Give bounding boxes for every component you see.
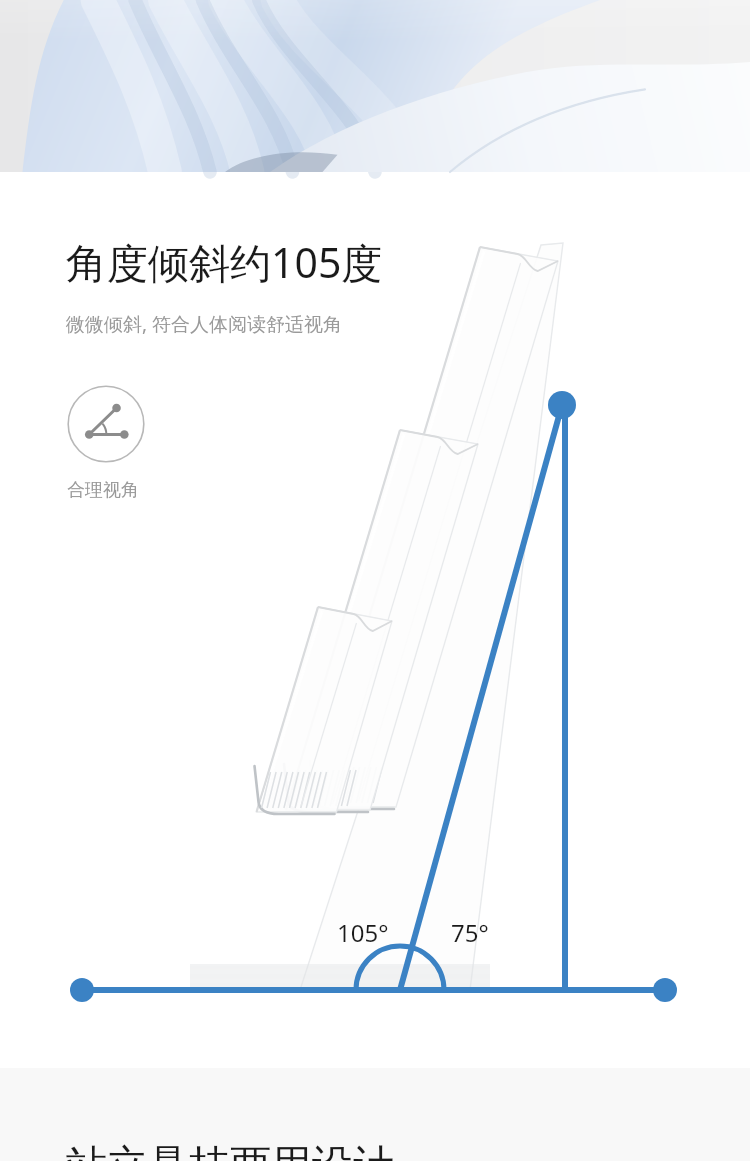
staticText: 微微倾斜, 符合人体阅读舒适视角 [66, 311, 343, 337]
staticText: 75° [451, 916, 489, 949]
staticText: 105° [337, 916, 389, 949]
staticText: 合理视角 [67, 479, 139, 502]
staticText: 角度倾斜约105度 [66, 234, 383, 290]
staticText: 站立悬挂两用设计 [66, 1140, 394, 1161]
button[interactable]: 合理视角 [67, 385, 145, 502]
